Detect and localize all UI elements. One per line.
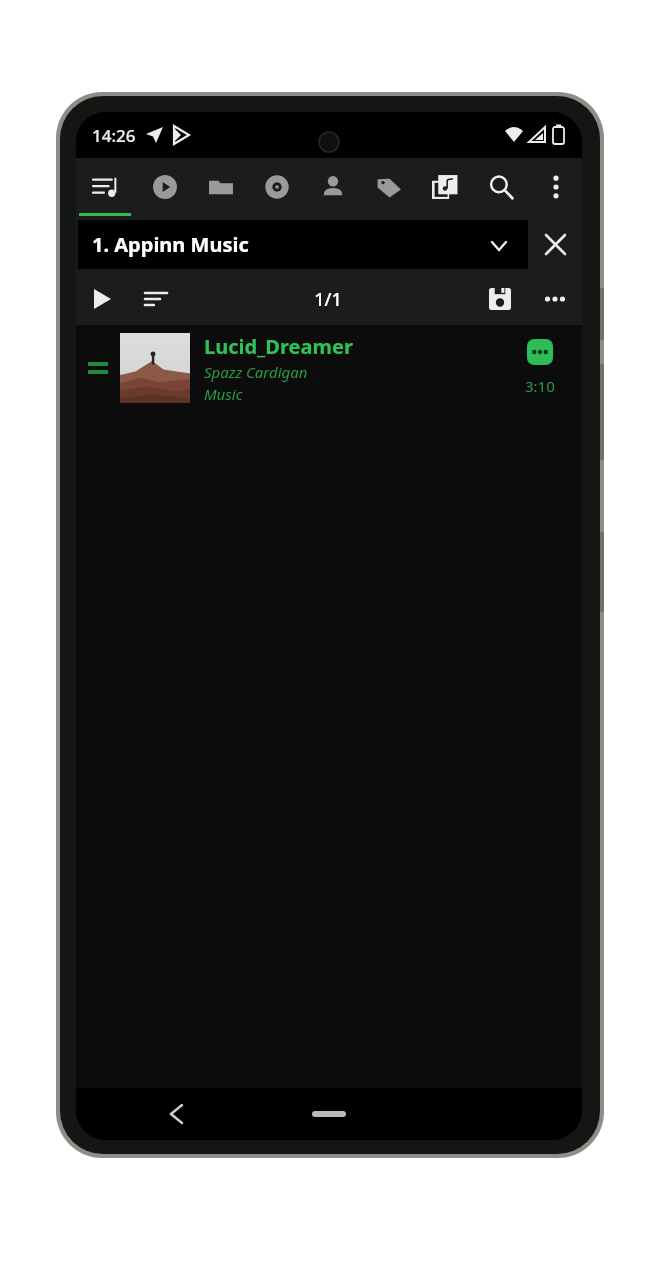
button[interactable]: Artists: [305, 158, 361, 216]
staticText: 3:10: [525, 376, 555, 396]
button[interactable]: Albums: [249, 158, 305, 216]
button[interactable]: Folders: [193, 158, 249, 216]
button[interactable]: Library: [417, 158, 473, 216]
button[interactable]: More options: [528, 273, 582, 325]
button[interactable]: 1. Appinn Music: [78, 220, 528, 269]
button[interactable]: Home: [312, 1111, 346, 1117]
staticText: 14:26: [92, 124, 136, 147]
other: Reorder: [76, 325, 120, 411]
button[interactable]: Sort: [128, 273, 184, 325]
staticText: 1. Appinn Music: [92, 231, 488, 258]
button[interactable]: Playlists: [76, 158, 136, 216]
button[interactable]: Genres: [361, 158, 417, 216]
button[interactable]: Save: [472, 273, 528, 325]
staticText: 1/1: [184, 287, 472, 312]
button[interactable]: More options: [529, 158, 582, 216]
button[interactable]: Close: [528, 216, 582, 273]
button[interactable]: Reorder: [76, 325, 582, 411]
button[interactable]: Search: [473, 158, 529, 216]
staticText: Spazz Cardigan: [204, 362, 308, 382]
button[interactable]: Track options: [527, 339, 553, 365]
staticText: Music: [204, 384, 243, 404]
button[interactable]: Play: [76, 273, 128, 325]
staticText: Lucid_Dreamer: [204, 333, 353, 360]
button[interactable]: Back: [154, 1092, 198, 1136]
button[interactable]: Now playing: [136, 158, 193, 216]
